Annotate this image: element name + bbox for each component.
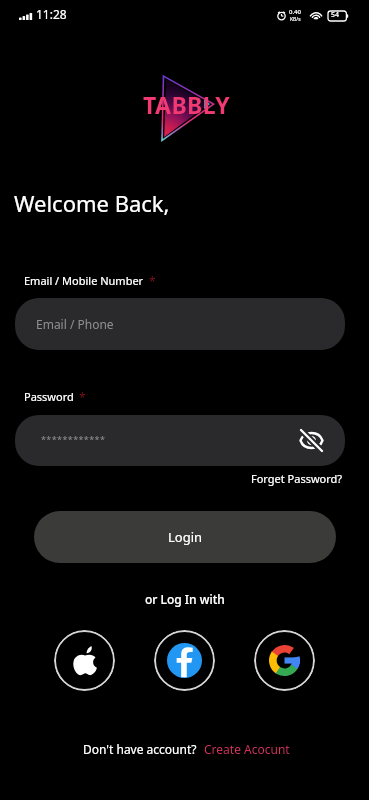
staticText: Email / Phone (36, 316, 114, 332)
staticText: * (79, 389, 86, 405)
staticText: 11:28 (36, 6, 67, 22)
staticText: Create Acocunt (204, 741, 290, 757)
button[interactable]: ************ (15, 415, 345, 466)
button[interactable]: Sign in with Apple (54, 630, 115, 691)
staticText: TABBLY (143, 89, 231, 120)
staticText: Don't have account? (83, 741, 197, 757)
staticText: or Log In with (145, 591, 225, 607)
staticText: 0.40 (289, 8, 301, 16)
staticText: * (149, 273, 156, 289)
staticText: KB/s (290, 16, 301, 23)
staticText: Password (24, 389, 74, 404)
button[interactable]: Sign in with Facebook (154, 630, 215, 691)
staticText: Login (168, 528, 203, 546)
button[interactable]: Show password (299, 428, 324, 453)
staticText: ************ (41, 433, 106, 445)
button[interactable]: Login (34, 511, 336, 563)
button[interactable]: Create Acocunt (204, 741, 290, 757)
button[interactable]: Sign in with Google (254, 630, 315, 691)
button[interactable]: Email / Phone (15, 298, 345, 350)
staticText: 54 (331, 10, 340, 20)
staticText: Welcome Back, (14, 188, 170, 218)
button[interactable]: Forget Password? (251, 471, 343, 486)
staticText: Forget Password? (251, 471, 343, 486)
staticText: Email / Mobile Number (24, 273, 144, 288)
